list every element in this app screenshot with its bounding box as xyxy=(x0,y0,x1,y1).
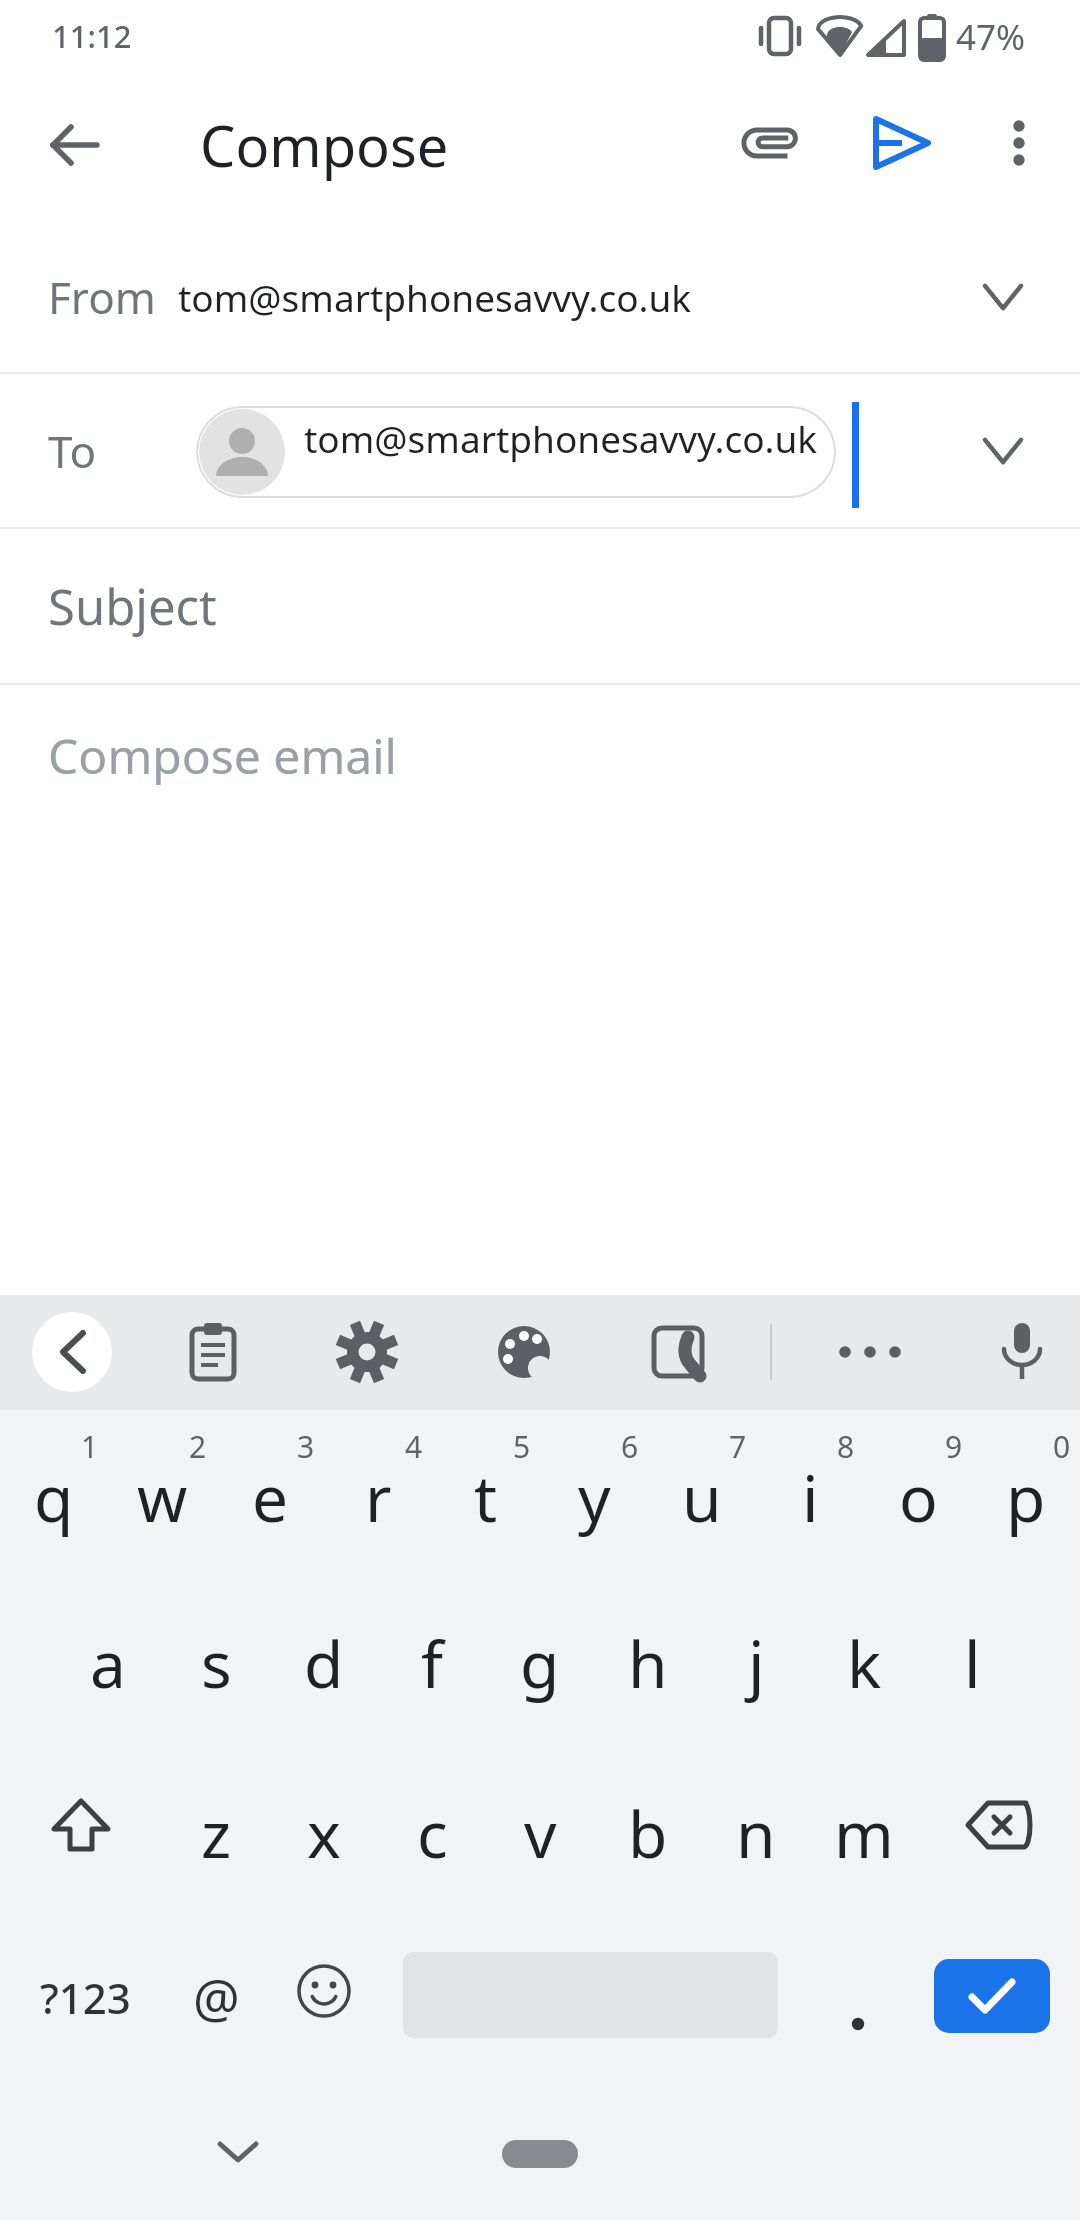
button[interactable] xyxy=(857,98,947,188)
staticText: s xyxy=(201,1620,232,1707)
button[interactable] xyxy=(162,1908,270,2074)
button[interactable] xyxy=(378,1908,810,2074)
button[interactable] xyxy=(0,374,1080,527)
staticText: l xyxy=(964,1620,981,1707)
staticText: v xyxy=(524,1790,557,1877)
button[interactable] xyxy=(327,1312,407,1392)
staticText: @ xyxy=(193,1962,240,2033)
button[interactable] xyxy=(486,1576,594,1742)
button[interactable] xyxy=(702,1742,810,1908)
staticText: 9 xyxy=(945,1426,963,1467)
button[interactable] xyxy=(810,1908,918,2074)
staticText: a xyxy=(90,1620,126,1707)
button[interactable] xyxy=(30,100,120,190)
button[interactable] xyxy=(378,1576,486,1742)
staticText: 5 xyxy=(513,1426,531,1467)
button[interactable] xyxy=(810,1576,918,1742)
staticText: u xyxy=(682,1454,722,1541)
staticText: w xyxy=(137,1454,188,1541)
staticText: j xyxy=(748,1620,765,1707)
staticText: p xyxy=(1006,1454,1046,1541)
button[interactable] xyxy=(982,1312,1062,1392)
button[interactable] xyxy=(594,1576,702,1742)
button[interactable] xyxy=(726,98,816,188)
button[interactable] xyxy=(216,1410,324,1576)
button[interactable] xyxy=(32,1312,112,1392)
staticText: 47% xyxy=(956,13,1026,61)
button[interactable] xyxy=(0,1410,108,1576)
staticText: Compose email xyxy=(48,723,398,788)
staticText: Subject xyxy=(48,573,217,640)
staticText: t xyxy=(474,1454,498,1541)
button[interactable] xyxy=(638,1312,718,1392)
staticText: m xyxy=(834,1790,894,1877)
button[interactable] xyxy=(378,1742,486,1908)
button[interactable] xyxy=(270,1908,378,2074)
button[interactable] xyxy=(270,1742,378,1908)
button[interactable] xyxy=(594,1742,702,1908)
staticText: tom@smartphonesavvy.co.uk xyxy=(304,413,818,463)
staticText: b xyxy=(628,1790,668,1877)
button[interactable] xyxy=(0,1742,162,1908)
button[interactable] xyxy=(0,1908,162,2074)
staticText: n xyxy=(736,1790,776,1877)
button[interactable] xyxy=(648,1410,756,1576)
button[interactable] xyxy=(756,1410,864,1576)
button[interactable] xyxy=(502,2140,578,2168)
staticText: 3 xyxy=(297,1426,315,1467)
staticText: tom@smartphonesavvy.co.uk xyxy=(178,272,692,322)
button[interactable] xyxy=(162,1742,270,1908)
button[interactable] xyxy=(173,1312,253,1392)
staticText: o xyxy=(899,1454,938,1541)
staticText: To xyxy=(48,421,97,481)
button[interactable] xyxy=(830,1312,910,1392)
button[interactable] xyxy=(0,685,1080,825)
staticText: 0 xyxy=(1053,1426,1071,1467)
staticText: Compose xyxy=(200,107,449,183)
button[interactable] xyxy=(810,1742,918,1908)
button[interactable] xyxy=(162,1576,270,1742)
button[interactable] xyxy=(918,1908,1080,2074)
staticText: From xyxy=(48,267,156,327)
button[interactable] xyxy=(864,1410,972,1576)
staticText: 7 xyxy=(729,1426,747,1467)
staticText: 8 xyxy=(837,1426,855,1467)
button[interactable] xyxy=(918,1576,1026,1742)
button[interactable] xyxy=(974,98,1064,188)
button[interactable] xyxy=(702,1576,810,1742)
staticText: z xyxy=(201,1790,232,1877)
staticText: g xyxy=(520,1620,560,1707)
staticText: q xyxy=(34,1454,74,1541)
button[interactable]: tom@smartphonesavvy.co.uk xyxy=(196,406,836,498)
button[interactable] xyxy=(484,1312,564,1392)
staticText: i xyxy=(802,1454,819,1541)
button[interactable] xyxy=(432,1410,540,1576)
button[interactable] xyxy=(0,529,1080,683)
staticText: x xyxy=(307,1790,341,1877)
staticText: d xyxy=(304,1620,344,1707)
staticText: k xyxy=(847,1620,882,1707)
button[interactable] xyxy=(972,1410,1080,1576)
staticText: h xyxy=(628,1620,668,1707)
button[interactable] xyxy=(324,1410,432,1576)
button[interactable] xyxy=(0,222,1080,372)
button[interactable] xyxy=(486,1742,594,1908)
button[interactable] xyxy=(918,1742,1080,1908)
staticText: 11:12 xyxy=(52,15,132,57)
staticText: 4 xyxy=(405,1426,423,1467)
button[interactable] xyxy=(190,2110,286,2196)
button[interactable] xyxy=(270,1576,378,1742)
staticText: r xyxy=(365,1454,392,1541)
staticText: 6 xyxy=(621,1426,639,1467)
staticText: y xyxy=(578,1454,611,1541)
staticText: e xyxy=(252,1454,289,1541)
button[interactable] xyxy=(108,1410,216,1576)
staticText: 2 xyxy=(189,1426,207,1467)
button[interactable] xyxy=(54,1576,162,1742)
button[interactable] xyxy=(540,1410,648,1576)
staticText: c xyxy=(417,1790,448,1877)
staticText: ?123 xyxy=(40,1969,131,2026)
staticText: f xyxy=(421,1620,444,1707)
staticText: 1 xyxy=(81,1426,99,1467)
